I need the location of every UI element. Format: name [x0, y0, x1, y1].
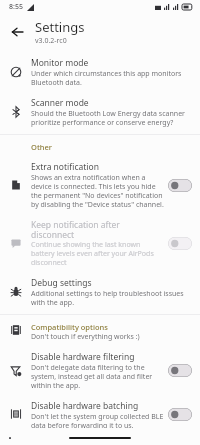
- staticText: Settings: [35, 18, 85, 36]
- staticText: Debug settings: [31, 277, 92, 289]
- staticText: Don't touch if everything works :): [31, 332, 140, 342]
- staticText: Keep notification after disconnect: [31, 219, 164, 240]
- staticText: Should the Bluetooth Low Energy data sca…: [31, 109, 188, 127]
- staticText: v3.0.2-rc0: [35, 36, 67, 46]
- button[interactable]: Debug settings: [0, 270, 200, 310]
- button[interactable]: Keep notification after disconnect: [0, 212, 200, 270]
- staticText: Disable hardware batching: [31, 400, 139, 412]
- staticText: Monitor mode: [31, 57, 89, 69]
- staticText: Other: [31, 142, 52, 152]
- button[interactable]: Extra notification: [0, 154, 200, 212]
- staticText: Don't let the system group collected BLE…: [31, 412, 164, 428]
- staticText: Extra notification: [31, 161, 99, 173]
- button[interactable]: Disable hardware batching: [0, 393, 200, 431]
- staticText: 8:55: [9, 2, 23, 12]
- button[interactable]: Toggle Disable hardware batching: [168, 408, 192, 421]
- staticText: Under which circumstances this app monit…: [31, 69, 188, 87]
- button[interactable]: Disable hardware filtering: [0, 344, 200, 393]
- button[interactable]: Toggle Disable hardware filtering: [168, 364, 192, 377]
- button[interactable]: Back: [4, 19, 30, 45]
- button[interactable]: Toggle Keep notification after disconnec…: [168, 237, 192, 250]
- button[interactable]: Scanner mode: [0, 90, 200, 130]
- staticText: Continue showing the last known battery …: [31, 240, 164, 267]
- staticText: Compatibility options: [31, 322, 108, 332]
- staticText: Scanner mode: [31, 97, 89, 109]
- button[interactable]: Toggle Extra notification: [168, 179, 192, 192]
- button[interactable]: Monitor mode: [0, 50, 200, 90]
- staticText: Disable hardware filtering: [31, 351, 135, 363]
- staticText: Shows an extra notification when a devic…: [31, 173, 164, 209]
- staticText: Don't delegate data filtering to the sys…: [31, 363, 164, 390]
- staticText: Additional settings to help troubleshoot…: [31, 289, 188, 307]
